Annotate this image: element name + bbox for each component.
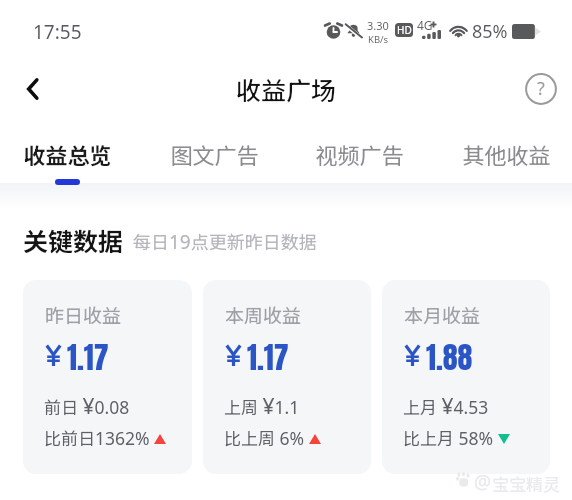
staticText: KB/s: [368, 33, 389, 46]
button[interactable]: 本月收益: [382, 280, 550, 474]
button[interactable]: 昨日收益: [23, 280, 192, 474]
staticText: HD: [397, 23, 412, 37]
staticText: 其他收益: [462, 138, 551, 170]
button[interactable]: 图文广告: [152, 117, 276, 183]
staticText: 比上月 58%: [403, 425, 494, 450]
staticText: 本月收益: [404, 301, 481, 329]
staticText: 1.17: [247, 335, 289, 380]
staticText: 前日 ¥0.08: [44, 392, 130, 421]
staticText: 3.30: [367, 18, 389, 33]
staticText: 上月 ¥4.53: [403, 392, 489, 421]
staticText: 85%: [472, 19, 508, 44]
staticText: 上周 ¥1.1: [224, 392, 300, 421]
staticText: 每日19点更新昨日数据: [133, 228, 317, 254]
button[interactable]: 收益总览: [5, 117, 129, 183]
staticText: 17:55: [33, 19, 82, 45]
staticText: @: [474, 469, 492, 495]
staticText: ?: [537, 76, 545, 101]
staticText: 图文广告: [170, 138, 259, 170]
button[interactable]: Help: [521, 69, 561, 109]
staticText: 比上周 6%: [224, 425, 305, 450]
staticText: 比前日1362%: [44, 425, 150, 450]
staticText: 收益总览: [23, 138, 112, 170]
staticText: 1.88: [426, 335, 473, 380]
staticText: 收益广场: [236, 71, 337, 107]
staticText: 本周收益: [225, 301, 302, 329]
staticText: 4G: [417, 17, 433, 33]
staticText: 视频广告: [315, 138, 404, 170]
button[interactable]: 其他收益: [444, 117, 568, 183]
button[interactable]: 视频广告: [297, 117, 421, 183]
button[interactable]: Back: [10, 66, 56, 112]
staticText: 1.17: [67, 335, 109, 380]
staticText: 宝宝精灵: [492, 471, 560, 496]
staticText: 关键数据: [23, 222, 124, 258]
button[interactable]: 本周收益: [203, 280, 371, 474]
staticText: 昨日收益: [45, 301, 122, 329]
